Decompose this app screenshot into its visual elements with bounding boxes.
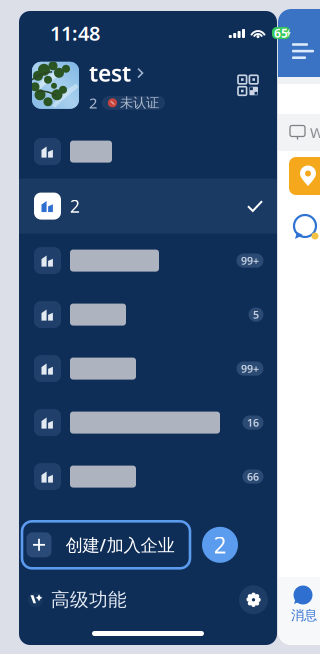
- button[interactable]: Scan QR code: [231, 68, 265, 102]
- button[interactable]: [19, 125, 277, 179]
- staticText: 2: [213, 530, 226, 560]
- staticText: 65: [274, 25, 288, 41]
- button[interactable]: 66: [19, 450, 277, 504]
- staticText: 未认证: [120, 95, 159, 111]
- button[interactable]: 2: [19, 179, 277, 234]
- button[interactable]: 99+: [19, 342, 277, 396]
- staticText: 2: [70, 195, 80, 218]
- staticText: 消息: [291, 607, 317, 623]
- button[interactable]: test: [32, 58, 231, 113]
- button[interactable]: 16: [19, 396, 277, 450]
- staticText: W: [310, 123, 320, 142]
- staticText: 11:48: [50, 20, 100, 46]
- staticText: 99+: [241, 361, 259, 376]
- staticText: 16: [247, 415, 259, 430]
- button[interactable]: 创建/加入企业: [22, 521, 190, 568]
- staticText: 99+: [241, 253, 259, 268]
- staticText: 创建/加入企业: [65, 533, 174, 556]
- staticText: 66: [247, 469, 259, 484]
- button[interactable]: 5: [19, 288, 277, 342]
- button[interactable]: 99+: [19, 234, 277, 288]
- button[interactable]: Settings: [239, 585, 268, 614]
- button[interactable]: 高级功能: [28, 580, 127, 619]
- staticText: test: [89, 58, 131, 88]
- staticText: 2: [89, 93, 97, 113]
- staticText: 5: [253, 307, 259, 322]
- staticText: 高级功能: [51, 588, 127, 611]
- button[interactable]: 2 notifications: [202, 527, 238, 563]
